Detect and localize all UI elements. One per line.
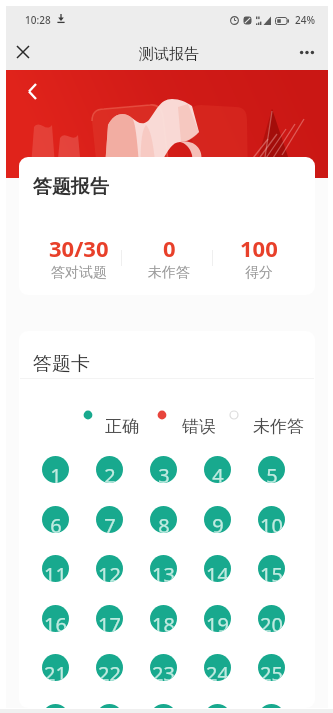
staticText: 25	[260, 660, 283, 681]
button[interactable]: 5	[258, 456, 285, 483]
staticText: 5	[266, 462, 278, 483]
button[interactable]: 2	[96, 456, 123, 483]
button[interactable]: 27	[96, 704, 123, 708]
staticText: 15	[260, 561, 283, 582]
button[interactable]: 16	[42, 605, 69, 632]
staticText: 13	[152, 561, 175, 582]
staticText: 11	[44, 561, 67, 582]
button[interactable]: 6	[42, 506, 69, 533]
button[interactable]: 20	[258, 605, 285, 632]
button[interactable]: 10	[258, 506, 285, 533]
button[interactable]: 9	[204, 506, 231, 533]
staticText: 18	[152, 611, 175, 632]
staticText: 10	[260, 512, 283, 533]
staticText: 未作答	[253, 416, 304, 437]
button[interactable]: 25	[258, 654, 285, 681]
button[interactable]: Back	[17, 76, 47, 106]
staticText: 2	[104, 462, 116, 483]
staticText: 22	[98, 660, 121, 681]
staticText: 1	[50, 462, 62, 483]
staticText: 答题报告	[33, 175, 109, 199]
staticText: 正确	[105, 416, 139, 437]
staticText: 14	[206, 561, 229, 582]
staticText: 得分	[245, 264, 273, 282]
button[interactable]: 13	[150, 555, 177, 582]
button[interactable]: 15	[258, 555, 285, 582]
staticText: 0	[163, 233, 176, 263]
staticText: 8	[158, 512, 170, 533]
button[interactable]: 14	[204, 555, 231, 582]
button[interactable]: 24	[204, 654, 231, 681]
button[interactable]: 17	[96, 605, 123, 632]
staticText: 测试报告	[139, 45, 199, 64]
staticText: 24%	[295, 13, 315, 27]
button[interactable]: 4	[204, 456, 231, 483]
button[interactable]: 7	[96, 506, 123, 533]
button[interactable]: 22	[96, 654, 123, 681]
button[interactable]: 26	[42, 704, 69, 708]
button[interactable]: 28	[150, 704, 177, 708]
staticText: 9	[212, 512, 224, 533]
staticText: 错误	[182, 416, 216, 437]
staticText: 21	[44, 660, 67, 681]
staticText: 20	[260, 611, 283, 632]
staticText: 100	[240, 233, 278, 263]
staticText: 7	[104, 512, 116, 533]
staticText: 19	[206, 611, 229, 632]
staticText: 23	[152, 660, 175, 681]
staticText: 16	[44, 611, 67, 632]
staticText: 6	[50, 512, 62, 533]
staticText: 10:28	[25, 13, 51, 27]
staticText: 答题卡	[33, 352, 90, 376]
button[interactable]: 1	[42, 456, 69, 483]
button[interactable]: 23	[150, 654, 177, 681]
staticText: 30/30	[49, 233, 109, 263]
button[interactable]: 21	[42, 654, 69, 681]
staticText: 17	[98, 611, 121, 632]
staticText: 12	[98, 561, 121, 582]
button[interactable]: 18	[150, 605, 177, 632]
button[interactable]: 8	[150, 506, 177, 533]
button[interactable]: 30	[258, 704, 285, 708]
button[interactable]: Close	[8, 36, 38, 66]
button[interactable]: 29	[204, 704, 231, 708]
button[interactable]: 19	[204, 605, 231, 632]
button[interactable]: 12	[96, 555, 123, 582]
staticText: 3	[158, 462, 170, 483]
button[interactable]: More options	[292, 36, 322, 66]
staticText: 4	[212, 462, 224, 483]
staticText: 答对试题	[51, 264, 107, 282]
button[interactable]: 3	[150, 456, 177, 483]
staticText: 未作答	[148, 264, 190, 282]
staticText: 24	[206, 660, 229, 681]
button[interactable]: 11	[42, 555, 69, 582]
